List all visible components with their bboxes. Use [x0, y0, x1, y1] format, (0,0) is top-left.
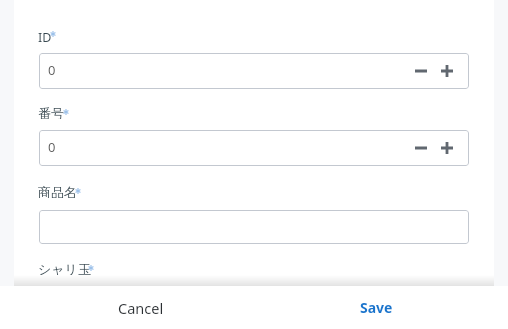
- staticText: 0: [48, 61, 56, 79]
- button[interactable]: Decrease: [410, 137, 432, 159]
- button[interactable]: Decrease: [410, 60, 432, 82]
- staticText: 番号: [38, 105, 64, 119]
- button[interactable]: Save: [293, 286, 459, 329]
- button[interactable]: [39, 210, 469, 244]
- button[interactable]: 0: [39, 53, 469, 89]
- staticText: Save: [360, 298, 393, 317]
- button[interactable]: 0: [39, 130, 469, 166]
- staticText: Cancel: [118, 298, 164, 318]
- staticText: ID: [38, 29, 52, 43]
- button[interactable]: Increase: [436, 137, 458, 159]
- staticText: シャリ玉: [38, 261, 91, 275]
- button[interactable]: Cancel: [58, 286, 224, 329]
- button[interactable]: Increase: [436, 60, 458, 82]
- staticText: 0: [48, 138, 56, 156]
- staticText: 商品名: [38, 184, 77, 198]
